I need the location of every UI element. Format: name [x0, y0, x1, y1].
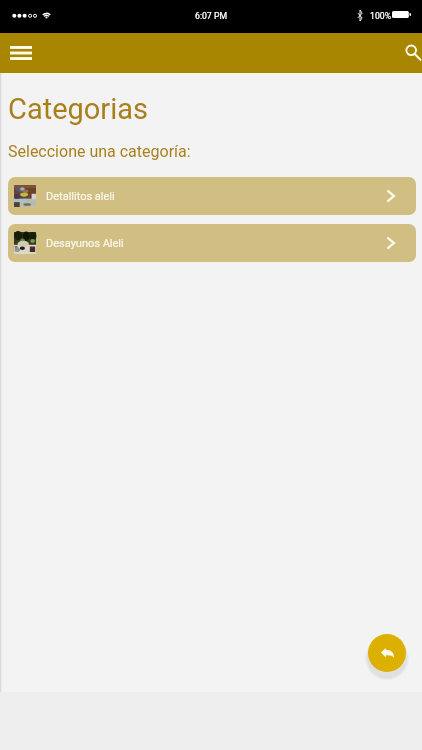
staticText: 100%	[370, 11, 392, 21]
staticText: Categorias	[8, 92, 148, 126]
button[interactable]: Detallitos aleli	[8, 177, 416, 215]
button[interactable]: Back	[368, 634, 406, 672]
button[interactable]: Desayunos Aleli	[8, 224, 416, 262]
button[interactable]: Menu	[0, 36, 42, 70]
staticText: 6:07 PM	[195, 11, 227, 21]
button[interactable]: Search	[403, 35, 422, 71]
staticText: Detallitos aleli	[46, 190, 115, 203]
staticText: Seleccione una categoría:	[8, 142, 191, 161]
staticText: Desayunos Aleli	[46, 237, 124, 250]
